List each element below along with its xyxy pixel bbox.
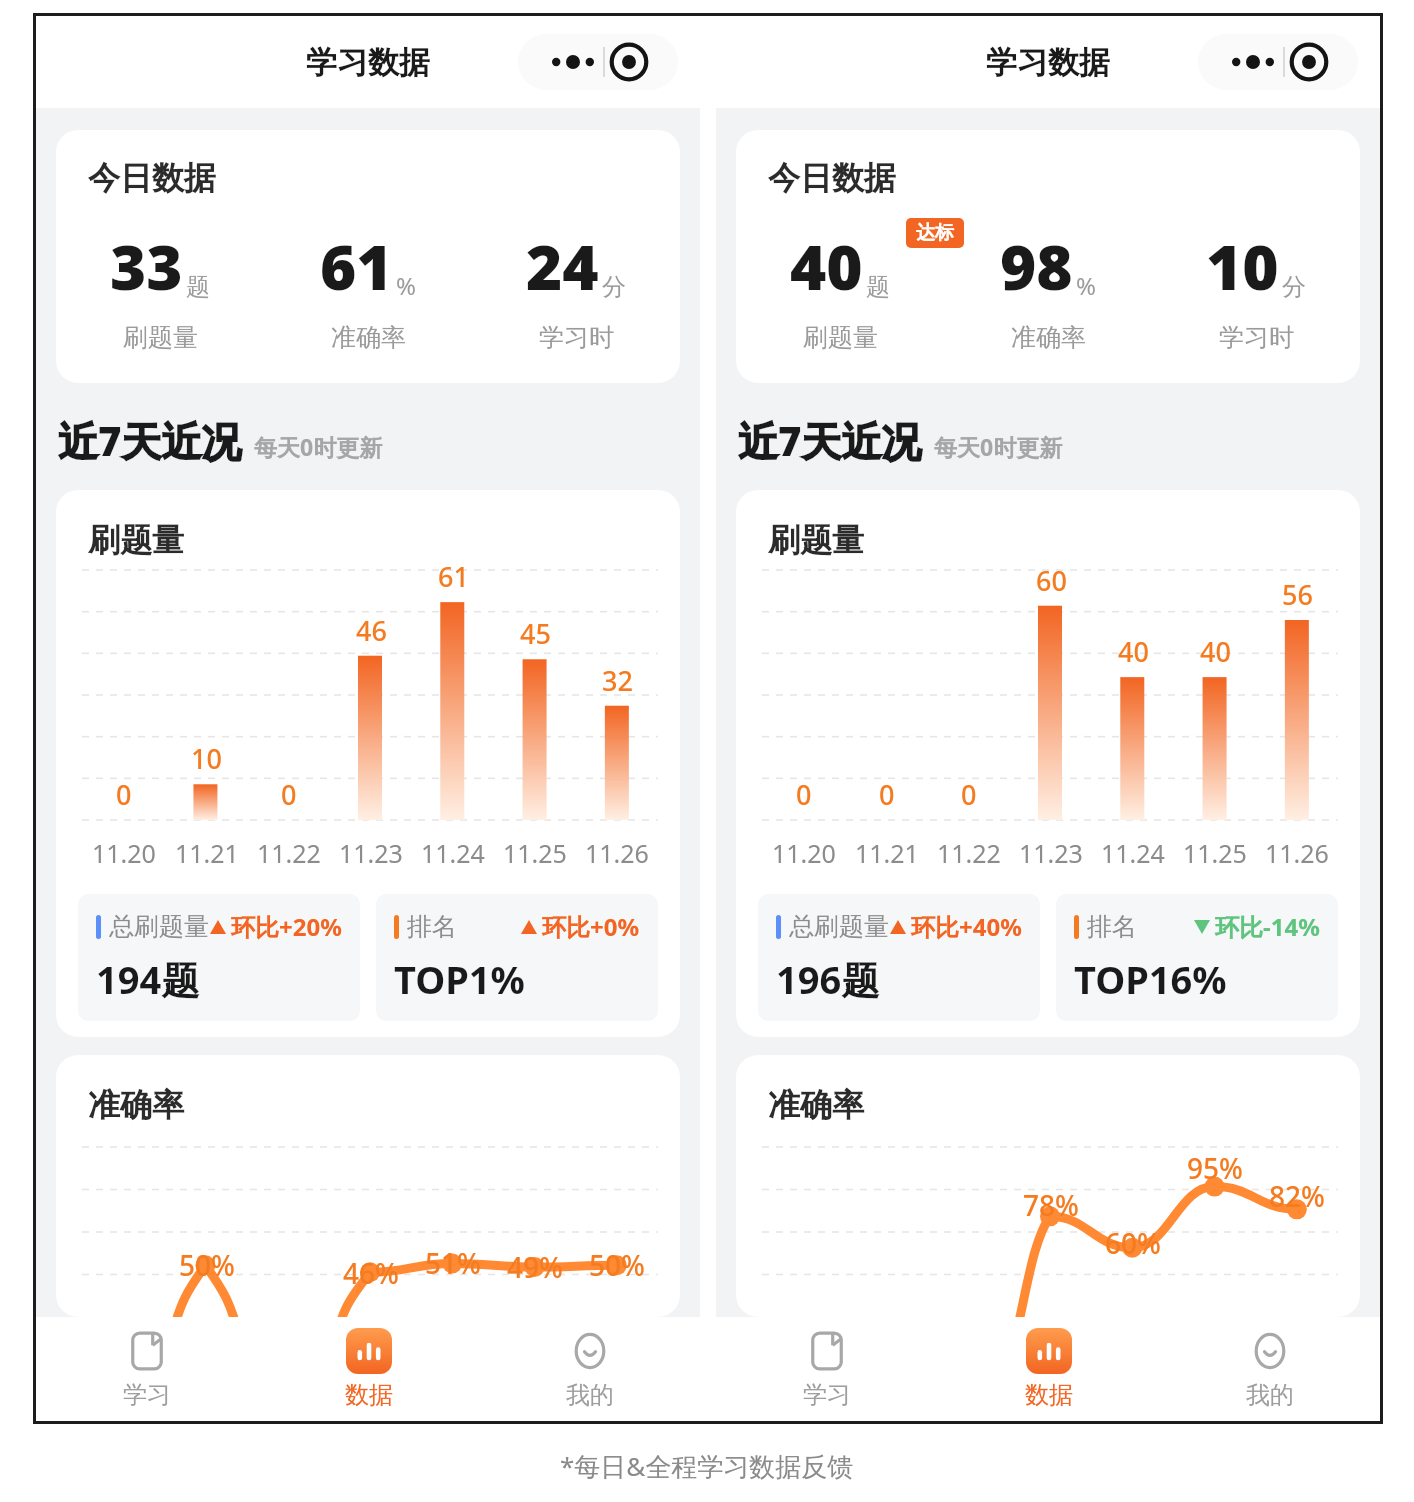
staticText: TOP1% xyxy=(394,953,525,1005)
button[interactable]: More and close xyxy=(1198,34,1358,90)
staticText: 刷题量 xyxy=(123,322,198,353)
staticText: 达标 xyxy=(916,221,954,245)
staticText: 40 xyxy=(790,224,863,308)
staticText: *每日&全程学习数据反馈 xyxy=(560,1448,854,1484)
staticText: 0 xyxy=(281,776,297,813)
staticText: 10 xyxy=(191,740,222,777)
button[interactable]: 准确率 xyxy=(736,1055,1360,1317)
staticText: 82% xyxy=(1269,1177,1325,1215)
button[interactable]: 准确率 xyxy=(56,1055,680,1317)
staticText: 环比+20% xyxy=(231,910,342,943)
staticText: 194题 xyxy=(96,953,200,1005)
staticText: 总刷题量 xyxy=(789,911,889,942)
staticText: 50% xyxy=(179,1246,235,1284)
staticText: 60 xyxy=(1036,562,1067,599)
button[interactable]: 学习 xyxy=(36,1317,258,1421)
staticText: 24 xyxy=(526,224,599,308)
staticText: 学习时 xyxy=(539,322,614,353)
staticText: 我的 xyxy=(1246,1380,1294,1410)
staticText: 11.25 xyxy=(1183,836,1247,870)
button[interactable]: 数据 xyxy=(258,1317,479,1421)
staticText: 11.20 xyxy=(92,836,156,870)
staticText: 环比-14% xyxy=(1215,910,1320,943)
staticText: 数据 xyxy=(345,1380,393,1410)
staticText: 排名 xyxy=(407,911,457,942)
staticText: 刷题量 xyxy=(768,520,864,560)
staticText: 32 xyxy=(602,662,633,699)
staticText: 每天0时更新 xyxy=(934,431,1063,462)
staticText: 61 xyxy=(320,224,393,308)
staticText: 11.21 xyxy=(855,836,919,870)
staticText: 分 xyxy=(1282,272,1306,302)
button[interactable]: 总刷题量 xyxy=(758,894,1040,1021)
staticText: 11.22 xyxy=(257,836,321,870)
staticText: 196题 xyxy=(776,953,880,1005)
button[interactable]: 我的 xyxy=(1159,1317,1380,1421)
staticText: 50% xyxy=(589,1246,645,1284)
staticText: 近7天近况 xyxy=(58,413,242,468)
staticText: 40 xyxy=(1200,633,1231,670)
staticText: 11.20 xyxy=(772,836,836,870)
staticText: 每天0时更新 xyxy=(254,431,383,462)
staticText: 刷题量 xyxy=(803,322,878,353)
button[interactable]: 我的 xyxy=(479,1317,700,1421)
staticText: 10 xyxy=(1206,224,1279,308)
staticText: 49% xyxy=(507,1248,563,1286)
staticText: 11.23 xyxy=(1019,836,1083,870)
staticText: 近7天近况 xyxy=(738,413,922,468)
staticText: TOP16% xyxy=(1074,953,1227,1005)
staticText: 98 xyxy=(1000,224,1073,308)
staticText: 学习 xyxy=(803,1380,851,1410)
staticText: 学习时 xyxy=(1219,322,1294,353)
staticText: 学习数据 xyxy=(986,43,1110,82)
button[interactable]: 刷题量 xyxy=(736,490,1360,1037)
staticText: 准确率 xyxy=(768,1085,864,1125)
staticText: % xyxy=(396,269,416,302)
staticText: 准确率 xyxy=(331,322,406,353)
staticText: 准确率 xyxy=(1011,322,1086,353)
button[interactable]: 学习 xyxy=(716,1317,938,1421)
button[interactable]: 排名 xyxy=(1056,894,1338,1021)
staticText: 51% xyxy=(425,1244,481,1282)
staticText: 11.26 xyxy=(1265,836,1329,870)
staticText: 学习数据 xyxy=(306,43,430,82)
button[interactable]: 数据 xyxy=(938,1317,1159,1421)
staticText: 11.24 xyxy=(421,836,485,870)
staticText: 46% xyxy=(343,1254,399,1292)
button[interactable]: 今日数据 xyxy=(56,130,680,383)
staticText: 11.26 xyxy=(585,836,649,870)
button[interactable]: More and close xyxy=(518,34,678,90)
staticText: 总刷题量 xyxy=(109,911,209,942)
staticText: 0 xyxy=(879,776,895,813)
staticText: 0 xyxy=(796,776,812,813)
staticText: 今日数据 xyxy=(88,158,216,198)
staticText: 61 xyxy=(438,558,469,595)
staticText: 题 xyxy=(186,272,210,302)
button[interactable]: 排名 xyxy=(376,894,658,1021)
staticText: 0 xyxy=(961,776,977,813)
staticText: 数据 xyxy=(1025,1380,1073,1410)
staticText: 环比+40% xyxy=(911,910,1022,943)
button[interactable]: 总刷题量 xyxy=(78,894,360,1021)
staticText: 11.23 xyxy=(339,836,403,870)
staticText: 0 xyxy=(116,776,132,813)
staticText: 刷题量 xyxy=(88,520,184,560)
staticText: 今日数据 xyxy=(768,158,896,198)
staticText: 40 xyxy=(1118,633,1149,670)
staticText: % xyxy=(1076,269,1096,302)
staticText: 排名 xyxy=(1087,911,1137,942)
staticText: 11.24 xyxy=(1101,836,1165,870)
staticText: 33 xyxy=(110,224,183,308)
staticText: 11.22 xyxy=(937,836,1001,870)
staticText: 46 xyxy=(356,612,387,649)
staticText: 60% xyxy=(1105,1224,1161,1262)
staticText: 78% xyxy=(1023,1186,1079,1224)
staticText: 我的 xyxy=(566,1380,614,1410)
button[interactable]: 刷题量 xyxy=(56,490,680,1037)
button[interactable]: 今日数据 xyxy=(736,130,1360,383)
staticText: 准确率 xyxy=(88,1085,184,1125)
staticText: 11.21 xyxy=(175,836,239,870)
staticText: 分 xyxy=(602,272,626,302)
staticText: 11.25 xyxy=(503,836,567,870)
staticText: 环比+0% xyxy=(542,910,640,943)
